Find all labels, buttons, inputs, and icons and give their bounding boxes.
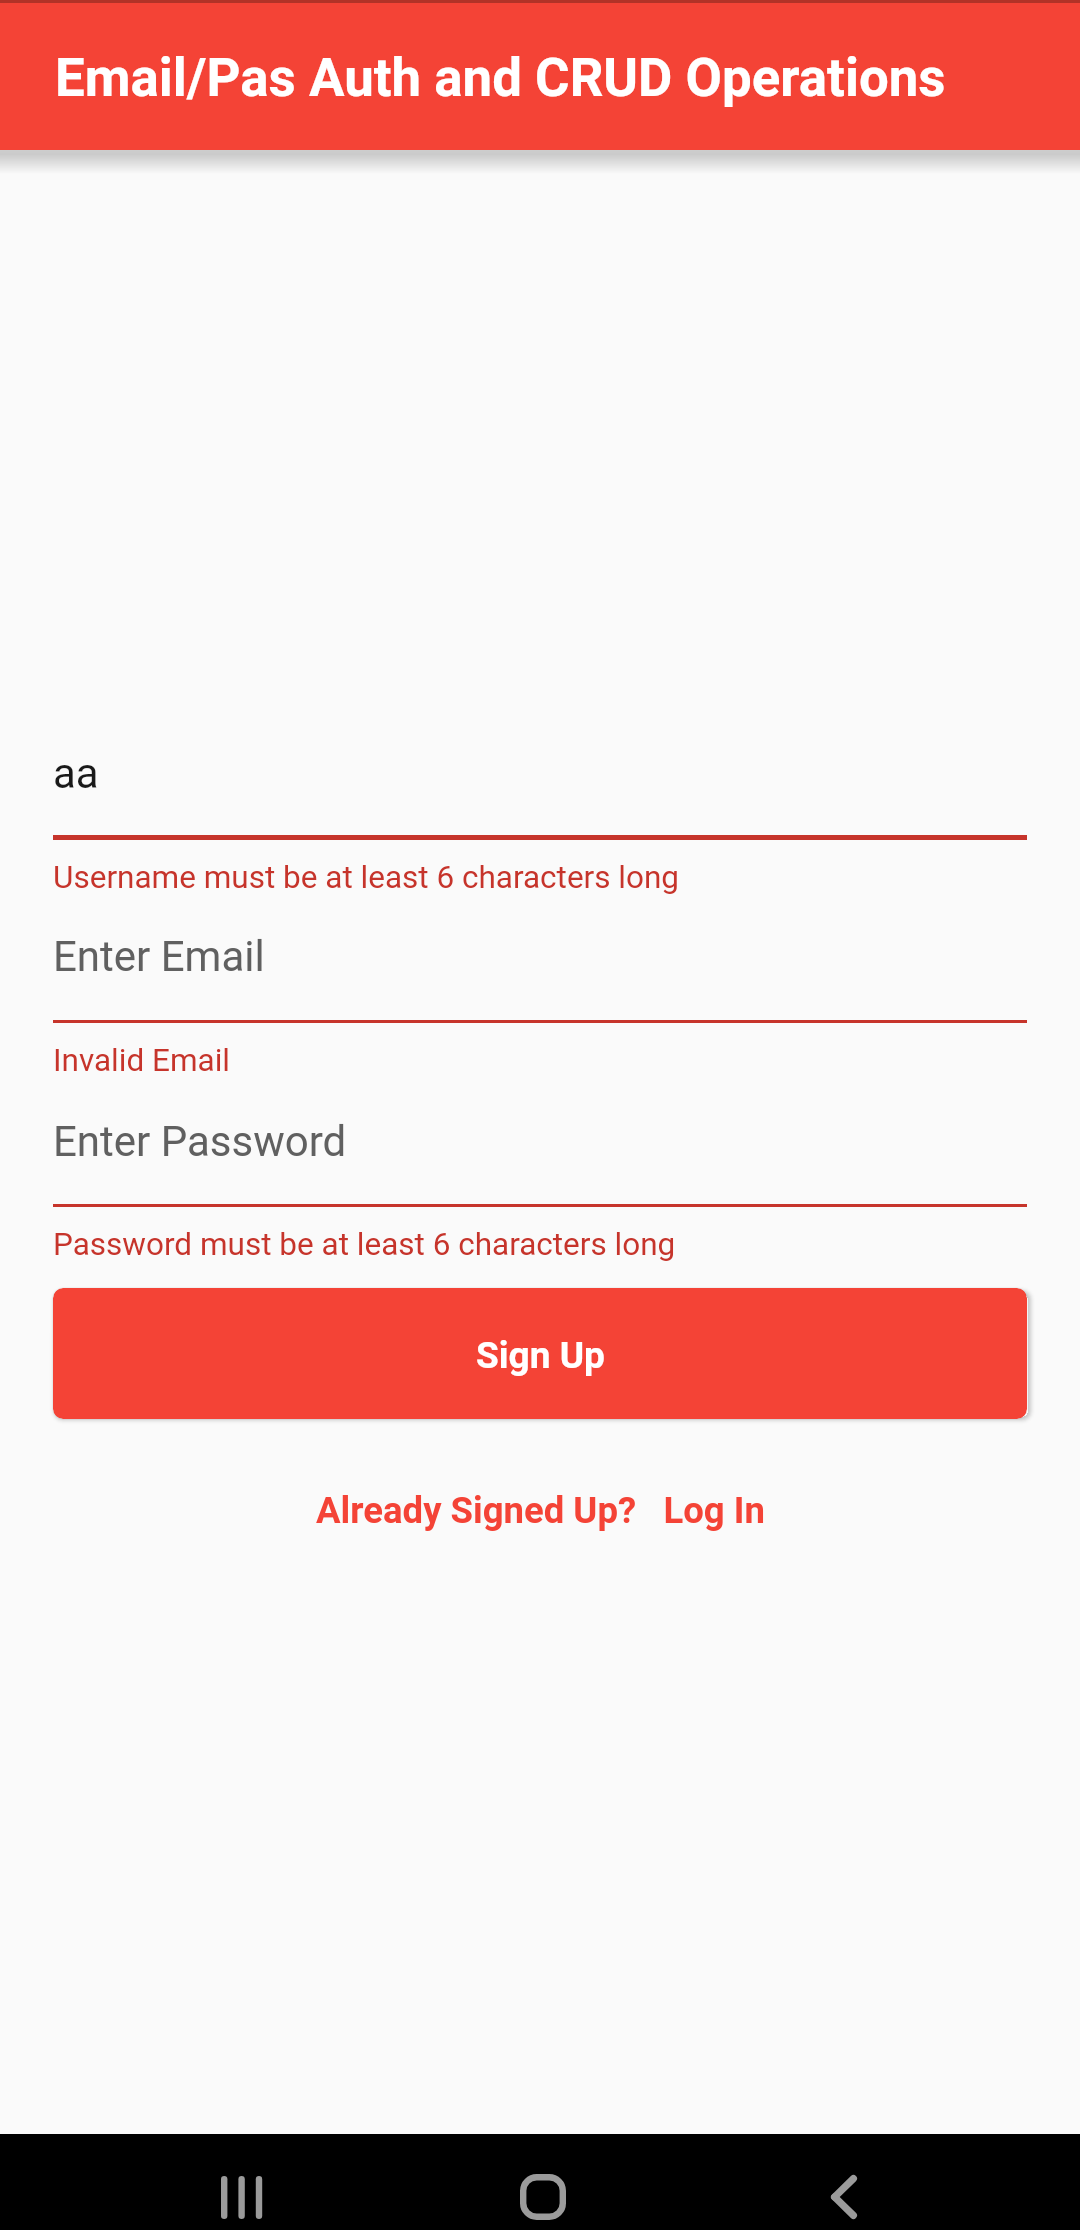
staticText: Enter Password [53,1117,347,1166]
button[interactable]: Back [774,2134,914,2230]
button[interactable]: Enter Email [53,923,1027,1023]
staticText: Email/Pas Auth and CRUD Operations [55,47,946,109]
button[interactable]: aa [53,740,1027,840]
staticText: Username must be at least 6 characters l… [53,859,680,896]
staticText: Invalid Email [53,1042,231,1079]
button[interactable]: Already Signed Up? Log In [316,1489,765,1532]
button[interactable]: Sign Up [53,1288,1027,1419]
button[interactable]: Enter Password [53,1107,1027,1207]
staticText: Enter Email [53,932,265,981]
staticText: Sign Up [476,1334,605,1377]
staticText: Password must be at least 6 characters l… [53,1226,676,1263]
button[interactable]: Home [473,2134,613,2230]
staticText: Already Signed Up? Log In [316,1489,765,1532]
button[interactable]: Recent apps [171,2134,311,2230]
staticText: aa [53,749,99,798]
